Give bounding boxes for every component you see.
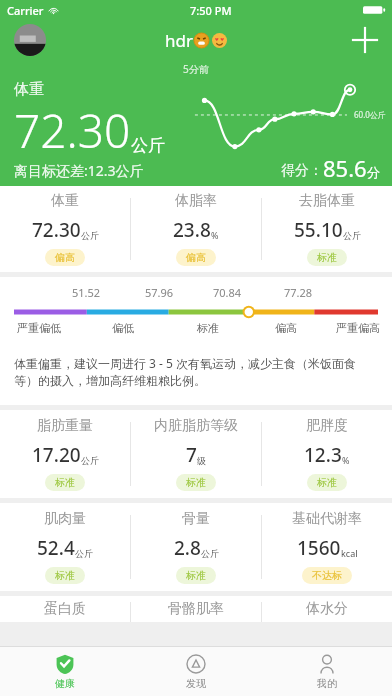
- staticText: 发现: [186, 677, 206, 690]
- staticText: 肥胖度: [306, 417, 348, 435]
- button[interactable]: Add measurement: [348, 23, 382, 57]
- button[interactable]: 体水分: [262, 596, 392, 622]
- staticText: %: [211, 229, 219, 241]
- staticText: 脂肪重量: [37, 417, 93, 435]
- staticText: 去脂体重: [299, 192, 355, 210]
- staticText: 60.0公斤: [354, 109, 386, 120]
- staticText: 2.8: [174, 535, 201, 561]
- staticText: 标准: [186, 476, 206, 489]
- staticText: 70.84: [213, 285, 242, 300]
- staticText: 77.28: [284, 285, 313, 300]
- button[interactable]: 去脂体重: [262, 186, 392, 272]
- button[interactable]: 健康: [0, 647, 130, 696]
- button[interactable]: 体重: [0, 186, 130, 272]
- staticText: 肌肉量: [44, 510, 86, 528]
- staticText: 蛋白质: [44, 600, 86, 618]
- staticText: 公斤: [343, 230, 361, 241]
- staticText: 标准: [317, 476, 337, 489]
- button[interactable]: Profile avatar: [14, 24, 46, 56]
- staticText: 标准: [197, 321, 219, 335]
- staticText: hdr: [165, 29, 193, 52]
- staticText: 5分前: [183, 62, 209, 76]
- staticText: 公斤: [75, 548, 93, 559]
- staticText: 基础代谢率: [292, 510, 362, 528]
- staticText: 72.30: [14, 99, 131, 162]
- staticText: 严重偏高: [336, 321, 380, 335]
- staticText: 7: [186, 442, 197, 468]
- staticText: 12.3: [304, 442, 342, 468]
- staticText: 骨骼肌率: [168, 600, 224, 618]
- staticText: 体重偏重，建议一周进行 3 - 5 次有氧运动，减少主食（米饭面食等）的摄入，增…: [14, 355, 378, 389]
- staticText: 健康: [55, 677, 75, 690]
- button[interactable]: 肌肉量: [0, 503, 130, 591]
- staticText: 23.8: [173, 217, 211, 243]
- staticText: 不达标: [312, 569, 342, 582]
- staticText: 公斤: [81, 230, 99, 241]
- button[interactable]: 骨量: [131, 503, 261, 591]
- button[interactable]: 体脂率: [131, 186, 261, 272]
- staticText: 骨量: [182, 510, 210, 528]
- staticText: 52.4: [37, 535, 75, 561]
- staticText: 偏低: [112, 321, 134, 335]
- staticText: 体重: [51, 192, 79, 210]
- button[interactable]: 基础代谢率: [262, 503, 392, 591]
- button[interactable]: 内脏脂肪等级: [131, 410, 261, 498]
- staticText: 17.20: [32, 442, 81, 468]
- staticText: 1560: [297, 535, 341, 561]
- button[interactable]: 我的: [261, 647, 392, 696]
- button[interactable]: 骨骼肌率: [131, 596, 261, 622]
- staticText: 标准: [55, 569, 75, 582]
- staticText: 得分：: [281, 162, 323, 180]
- button[interactable]: 脂肪重量: [0, 410, 130, 498]
- staticText: Carrier: [7, 3, 44, 18]
- staticText: 内脏脂肪等级: [154, 417, 238, 435]
- button[interactable]: 发现: [130, 647, 261, 696]
- button[interactable]: 蛋白质: [0, 596, 130, 622]
- staticText: 51.52: [72, 285, 101, 300]
- staticText: 标准: [55, 476, 75, 489]
- staticText: 公斤: [201, 548, 219, 559]
- staticText: 分: [367, 164, 380, 180]
- staticText: 85.6: [323, 153, 367, 183]
- staticText: 72.30: [32, 217, 81, 243]
- staticText: 体重: [14, 80, 44, 99]
- staticText: 公斤: [131, 135, 165, 156]
- staticText: 57.96: [145, 285, 174, 300]
- staticText: 偏高: [186, 251, 206, 264]
- staticText: 偏高: [55, 251, 75, 264]
- staticText: 级: [197, 455, 206, 466]
- staticText: kcal: [341, 547, 358, 559]
- staticText: 7:50 PM: [190, 3, 232, 18]
- staticText: 标准: [186, 569, 206, 582]
- staticText: 55.10: [294, 217, 343, 243]
- staticText: 体脂率: [175, 192, 217, 210]
- staticText: 偏高: [275, 321, 297, 335]
- staticText: 严重偏低: [17, 321, 61, 335]
- staticText: 公斤: [81, 455, 99, 466]
- staticText: 离目标还差:12.3公斤: [14, 161, 144, 180]
- staticText: 我的: [317, 677, 337, 690]
- button[interactable]: 肥胖度: [262, 410, 392, 498]
- staticText: %: [342, 454, 350, 466]
- staticText: 标准: [317, 251, 337, 264]
- staticText: 体水分: [306, 600, 348, 618]
